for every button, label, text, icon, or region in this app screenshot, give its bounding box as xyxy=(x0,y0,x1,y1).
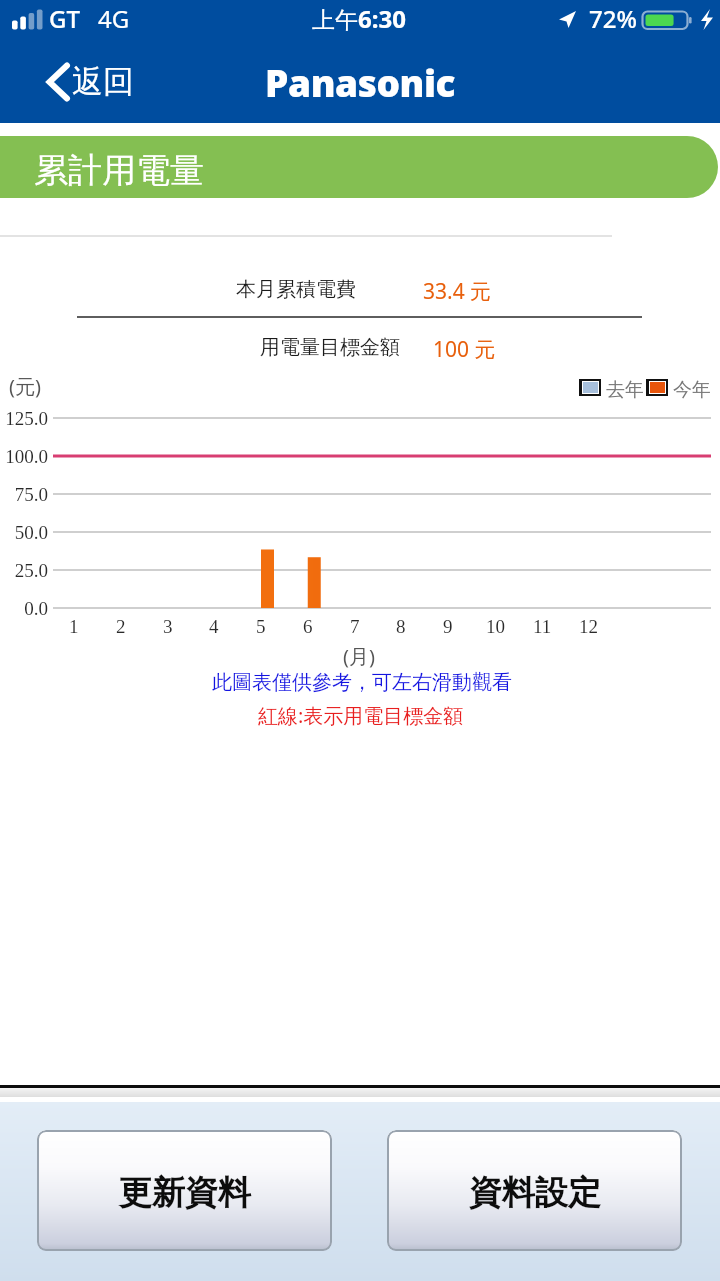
staticText: 72% xyxy=(589,2,637,35)
staticText: 0.0 xyxy=(0,598,48,619)
staticText: 5 xyxy=(256,616,266,637)
staticText: 今年 xyxy=(673,378,711,402)
staticText: 此圖表僅供參考，可左右滑動觀看 xyxy=(212,670,512,695)
staticText: 6:30 xyxy=(358,2,406,35)
staticText: 7 xyxy=(350,616,360,637)
button[interactable]: 返回 Back xyxy=(45,64,134,104)
staticText: 100.0 xyxy=(0,446,48,467)
staticText: 4 xyxy=(209,616,219,637)
staticText: 50.0 xyxy=(0,522,48,543)
staticText: 用電量目標金額 xyxy=(260,335,400,360)
staticText: 12 xyxy=(579,616,598,637)
staticText: 資料設定 xyxy=(469,1172,601,1214)
other: 每月電費長條圖 Monthly electricity cost chart xyxy=(0,0,720,1281)
staticText: 6 xyxy=(303,616,313,637)
staticText: 125.0 xyxy=(0,408,48,429)
staticText: 去年 xyxy=(606,378,644,402)
staticText: GT xyxy=(49,2,80,35)
staticText: 2 xyxy=(116,616,126,637)
staticText: 本月累積電費 xyxy=(236,277,356,302)
staticText: 3 xyxy=(163,616,173,637)
staticText: 紅線:表示用電目標金額 xyxy=(258,702,464,729)
staticText: 1 xyxy=(69,616,79,637)
staticText: 9 xyxy=(443,616,453,637)
staticText: 更新資料 xyxy=(119,1172,251,1214)
staticText: 25.0 xyxy=(0,560,48,581)
button[interactable]: 資料設定 xyxy=(387,1130,682,1251)
staticText: 返回 xyxy=(72,62,134,101)
staticText: 100 元 xyxy=(433,335,496,364)
staticText: 11 xyxy=(533,616,552,637)
staticText: Panasonic xyxy=(265,57,456,107)
staticText: 累計用電量 xyxy=(34,149,204,192)
staticText: 75.0 xyxy=(0,484,48,505)
staticText: (月) xyxy=(343,643,375,670)
staticText: 上午 xyxy=(312,6,358,35)
button[interactable]: 更新資料 xyxy=(37,1130,332,1251)
staticText: 33.4 元 xyxy=(423,277,492,306)
staticText: (元) xyxy=(9,373,41,400)
staticText: 8 xyxy=(396,616,406,637)
staticText: 10 xyxy=(486,616,505,637)
staticText: 4G xyxy=(98,2,130,35)
